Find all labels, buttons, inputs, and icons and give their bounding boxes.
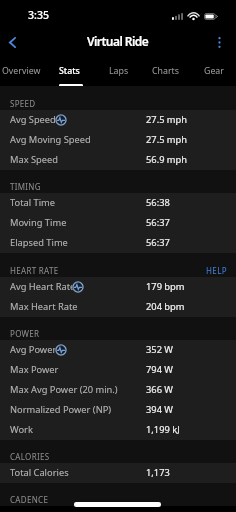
staticText: 366 W xyxy=(146,383,174,396)
button[interactable]: Avg Heart Rate xyxy=(0,277,236,297)
staticText: Overview xyxy=(2,65,41,77)
button[interactable]: HELP xyxy=(206,265,236,277)
staticText: 56:38 xyxy=(146,196,170,209)
staticText: 794 W xyxy=(146,363,174,376)
staticText: Avg Power xyxy=(10,343,57,356)
staticText: Max Power xyxy=(10,363,59,376)
staticText: 204 bpm xyxy=(146,300,185,313)
staticText: Total Time xyxy=(10,196,56,209)
staticText: HEART RATE xyxy=(10,265,59,276)
staticText: 56.9 mph xyxy=(146,153,188,166)
staticText: HELP xyxy=(206,265,227,276)
staticText: SPEED xyxy=(10,98,36,109)
staticText: Avg Heart Rate xyxy=(10,280,76,293)
staticText: 1,199 kJ xyxy=(146,423,180,436)
button[interactable]: Back xyxy=(1,31,23,53)
staticText: Laps xyxy=(109,65,129,77)
staticText: Avg Moving Speed xyxy=(10,133,91,146)
staticText: Max Heart Rate xyxy=(10,300,78,313)
button[interactable]: Avg Moving Speed xyxy=(0,130,236,150)
staticText: Gear xyxy=(204,65,224,77)
staticText: 394 W xyxy=(146,403,174,416)
staticText: Max Avg Power (20 min.) xyxy=(10,383,118,396)
staticText: 1,173 xyxy=(146,466,170,479)
button[interactable]: Stats xyxy=(53,57,74,86)
staticText: Virtual Ride xyxy=(87,33,149,49)
staticText: Elapsed Time xyxy=(10,236,68,249)
button[interactable]: Avg Speed xyxy=(0,110,236,130)
button[interactable]: Gear xyxy=(198,57,218,86)
button[interactable]: Total Time xyxy=(0,193,236,213)
staticText: Charts xyxy=(152,65,179,77)
staticText: Moving Time xyxy=(10,216,67,229)
button[interactable]: Elapsed Time xyxy=(0,233,236,253)
staticText: Total Calories xyxy=(10,466,69,479)
button[interactable]: Avg Power xyxy=(0,340,236,360)
button[interactable]: Charts xyxy=(146,57,173,86)
button[interactable]: More options xyxy=(209,32,229,52)
button[interactable]: Max Speed xyxy=(0,150,236,170)
staticText: CALORIES xyxy=(10,451,50,462)
staticText: 352 W xyxy=(146,343,174,356)
staticText: Work xyxy=(10,423,33,436)
staticText: POWER xyxy=(10,328,40,339)
button[interactable]: Max Heart Rate xyxy=(0,297,236,317)
staticText: Normalized Power (NP) xyxy=(10,403,112,416)
staticText: 3:35 xyxy=(28,8,50,22)
staticText: 179 bpm xyxy=(146,280,185,293)
staticText: 56:37 xyxy=(146,216,170,229)
button[interactable]: Moving Time xyxy=(0,213,236,233)
button[interactable]: Total Calories xyxy=(0,463,236,483)
staticText: Avg Speed xyxy=(10,113,56,126)
button[interactable]: Laps xyxy=(103,57,123,86)
button[interactable]: Max Avg Power (20 min.) xyxy=(0,380,236,400)
staticText: Stats xyxy=(59,65,80,77)
staticText: 27.5 mph xyxy=(146,133,188,146)
staticText: CADENCE xyxy=(10,494,49,505)
button[interactable]: Overview xyxy=(0,57,35,86)
staticText: 27.5 mph xyxy=(146,113,188,126)
staticText: 56:37 xyxy=(146,236,170,249)
button[interactable]: Work xyxy=(0,420,236,440)
staticText: TIMING xyxy=(10,181,41,192)
staticText: Max Speed xyxy=(10,153,59,166)
button[interactable]: Max Power xyxy=(0,360,236,380)
button[interactable]: Normalized Power (NP) xyxy=(0,400,236,420)
